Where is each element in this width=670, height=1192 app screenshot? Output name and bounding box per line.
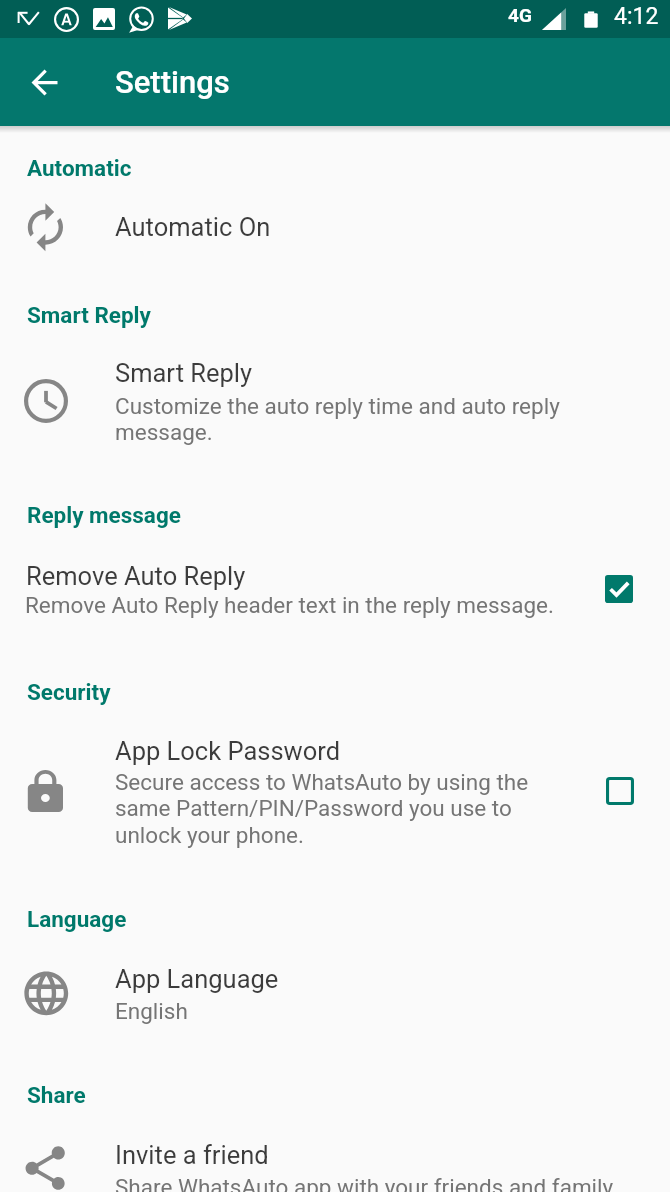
button[interactable]: Automatic On bbox=[0, 193, 670, 261]
staticText: Smart Reply bbox=[115, 358, 253, 388]
button[interactable]: App Language bbox=[0, 961, 670, 1046]
button[interactable]: Smart Reply bbox=[0, 355, 670, 455]
staticText: Language bbox=[27, 906, 127, 932]
staticText: Automatic bbox=[27, 155, 132, 181]
button[interactable]: App Lock Password bbox=[0, 733, 670, 863]
staticText: App Language bbox=[115, 964, 279, 994]
staticText: Invite a friend bbox=[115, 1140, 269, 1170]
button[interactable]: Back bbox=[20, 58, 69, 107]
staticText: Automatic On bbox=[115, 212, 271, 242]
staticText: 4:12 bbox=[614, 3, 659, 30]
staticText: Reply message bbox=[27, 502, 181, 528]
staticText: Security bbox=[27, 679, 111, 705]
button[interactable]: Unchecked bbox=[592, 763, 648, 819]
staticText: App Lock Password bbox=[115, 736, 341, 766]
staticText: 4G bbox=[508, 4, 532, 26]
button[interactable]: Checked bbox=[591, 561, 647, 617]
staticText: Secure access to WhatsAuto by using the … bbox=[115, 769, 560, 849]
staticText: Smart Reply bbox=[27, 302, 151, 328]
staticText: Remove Auto Reply bbox=[26, 561, 246, 591]
button[interactable]: Invite a friend bbox=[0, 1137, 670, 1192]
staticText: Share bbox=[27, 1082, 86, 1108]
button[interactable]: Remove Auto Reply bbox=[0, 558, 670, 633]
staticText: Share WhatsAuto app with your friends an… bbox=[115, 1174, 635, 1192]
staticText: Settings bbox=[115, 64, 230, 100]
staticText: Customize the auto reply time and auto r… bbox=[115, 393, 605, 446]
staticText: Remove Auto Reply header text in the rep… bbox=[25, 592, 605, 618]
staticText: English bbox=[115, 998, 515, 1024]
